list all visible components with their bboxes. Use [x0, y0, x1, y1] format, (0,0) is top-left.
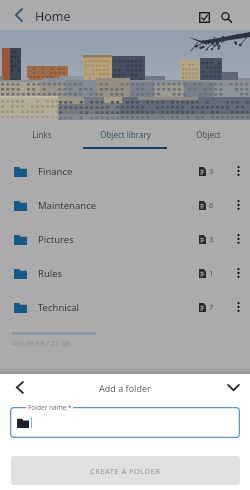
staticText: Object: [196, 129, 221, 140]
staticText: Links: [32, 129, 52, 140]
button[interactable]: Finance: [0, 154, 250, 188]
button[interactable]: Pictures: [0, 222, 250, 256]
staticText: Technical: [38, 301, 80, 314]
staticText: Pictures: [38, 233, 74, 246]
button[interactable]: Technical: [0, 290, 250, 324]
button[interactable]: Search: [215, 6, 238, 29]
staticText: 438.68 KB / 25 GB: [12, 339, 71, 349]
button[interactable]: More options: [229, 159, 247, 183]
button[interactable]: Object: [167, 120, 250, 149]
staticText: Rules: [38, 267, 63, 280]
button[interactable]: More options: [229, 295, 247, 319]
button[interactable]: CREATE A FOLDER: [11, 456, 240, 485]
button[interactable]: Object library: [84, 120, 167, 149]
button[interactable]: Select items: [193, 6, 216, 29]
button[interactable]: Links: [0, 120, 84, 149]
staticText: 7: [209, 302, 214, 312]
staticText: 1: [209, 268, 214, 278]
button[interactable]: Back: [6, 2, 30, 28]
staticText: Object library: [100, 129, 151, 140]
button[interactable]: More options: [229, 227, 247, 251]
button[interactable]: More options: [229, 261, 247, 285]
staticText: Finance: [38, 165, 73, 178]
staticText: 3: [209, 234, 214, 244]
button[interactable]: More options: [229, 193, 247, 217]
staticText: Folder name *: [28, 403, 72, 412]
button[interactable]: Back: [7, 375, 31, 399]
staticText: Maintenance: [38, 199, 97, 212]
button[interactable]: Folder name *: [10, 407, 240, 438]
staticText: CREATE A FOLDER: [90, 466, 161, 476]
staticText: 6: [209, 200, 214, 210]
button[interactable]: Maintenance: [0, 188, 250, 222]
staticText: Add a folder: [99, 382, 151, 394]
staticText: Home: [35, 8, 71, 25]
staticText: 3: [209, 166, 214, 176]
button[interactable]: Collapse sheet: [221, 375, 245, 399]
button[interactable]: Rules: [0, 256, 250, 290]
